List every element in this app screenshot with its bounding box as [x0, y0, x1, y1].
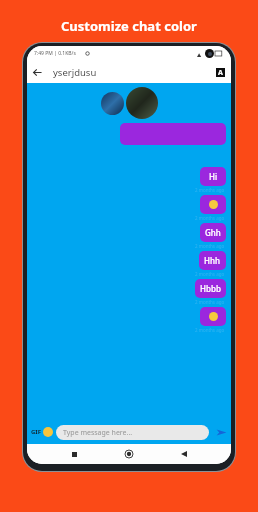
- button[interactable]: Ghh: [200, 223, 226, 242]
- staticText: 2 months ago: [195, 299, 225, 305]
- button[interactable]: Hi: [200, 167, 226, 186]
- staticText: 7:49 PM | 0.1KB/s: [34, 50, 76, 57]
- staticText: 2 months ago: [195, 327, 225, 333]
- staticText: 2 months ago: [195, 215, 225, 221]
- staticText: A: [218, 68, 223, 77]
- button[interactable]: Profile photo: [126, 87, 158, 119]
- button[interactable]: Back: [176, 446, 192, 462]
- button[interactable]: Send: [213, 424, 229, 440]
- staticText: Ghh: [205, 227, 221, 238]
- button[interactable]: Home: [121, 446, 137, 462]
- button[interactable]: Emoji: [43, 427, 53, 437]
- staticText: Type message here...: [63, 428, 133, 438]
- button[interactable]: [200, 195, 226, 214]
- button[interactable]: Back: [27, 62, 47, 82]
- staticText: Hi: [209, 171, 218, 182]
- staticText: 2 months ago: [195, 187, 225, 193]
- button[interactable]: Hbbb: [195, 279, 226, 298]
- staticText: 2 months ago: [195, 271, 225, 277]
- button[interactable]: yserjdusu: [53, 66, 97, 79]
- staticText: 2 months ago: [195, 243, 225, 249]
- staticText: Customize chat color: [61, 17, 197, 35]
- button[interactable]: Type message here...: [56, 425, 209, 440]
- button[interactable]: [120, 123, 226, 145]
- button[interactable]: Hhh: [199, 251, 226, 270]
- button[interactable]: Profile photo: [101, 92, 124, 115]
- button[interactable]: GIF: [31, 428, 41, 436]
- button[interactable]: [200, 307, 226, 326]
- button[interactable]: Recents: [66, 446, 82, 462]
- staticText: Hbbb: [200, 283, 221, 294]
- staticText: Hhh: [204, 255, 221, 266]
- button[interactable]: Font size: [216, 68, 225, 77]
